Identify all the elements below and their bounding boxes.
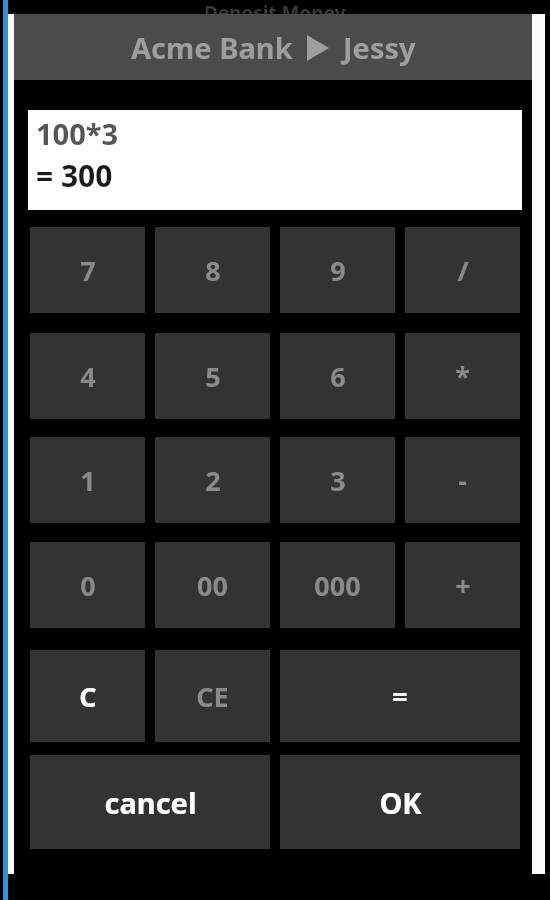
staticText: 9 [330, 252, 346, 289]
button[interactable]: 7 [30, 227, 145, 313]
button[interactable]: 1 [30, 437, 145, 523]
staticText: = 300 [36, 155, 113, 196]
staticText: OK [379, 783, 422, 822]
staticText: 4 [80, 358, 96, 395]
button[interactable]: Acme Bank [14, 14, 532, 80]
staticText: Acme Bank [131, 28, 293, 67]
button[interactable]: CE [155, 650, 270, 742]
button[interactable]: 8 [155, 227, 270, 313]
button[interactable]: 00 [155, 542, 270, 628]
staticText: 8 [205, 252, 221, 289]
staticText: 3 [330, 462, 346, 499]
button[interactable]: - [405, 437, 520, 523]
button[interactable]: 3 [280, 437, 395, 523]
staticText: cancel [104, 783, 197, 822]
staticText: / [457, 252, 469, 289]
button[interactable]: OK [280, 755, 520, 849]
staticText: C [79, 678, 97, 715]
staticText: = [392, 678, 408, 715]
staticText: Jessy [343, 28, 416, 67]
staticText: + [455, 567, 471, 604]
staticText: CE [196, 678, 229, 715]
button[interactable]: 6 [280, 333, 395, 419]
button[interactable]: cancel [30, 755, 270, 849]
staticText: * [455, 358, 470, 395]
button[interactable]: = [280, 650, 520, 742]
button[interactable]: * [405, 333, 520, 419]
button[interactable]: 4 [30, 333, 145, 419]
button[interactable]: 2 [155, 437, 270, 523]
staticText: 2 [205, 462, 221, 499]
staticText: 100*3 [36, 114, 119, 153]
button[interactable]: / [405, 227, 520, 313]
button[interactable]: 000 [280, 542, 395, 628]
button[interactable]: + [405, 542, 520, 628]
staticText: 00 [197, 567, 228, 604]
staticText: 1 [80, 462, 96, 499]
staticText: 6 [330, 358, 346, 395]
button[interactable]: 5 [155, 333, 270, 419]
staticText: 5 [205, 358, 221, 395]
button[interactable]: 9 [280, 227, 395, 313]
staticText: - [458, 462, 467, 499]
staticText: Deposit Money [204, 0, 346, 14]
staticText: 000 [314, 567, 361, 604]
staticText: 7 [80, 252, 96, 289]
button[interactable]: C [30, 650, 145, 742]
button[interactable]: 0 [30, 542, 145, 628]
staticText: 0 [80, 567, 96, 604]
